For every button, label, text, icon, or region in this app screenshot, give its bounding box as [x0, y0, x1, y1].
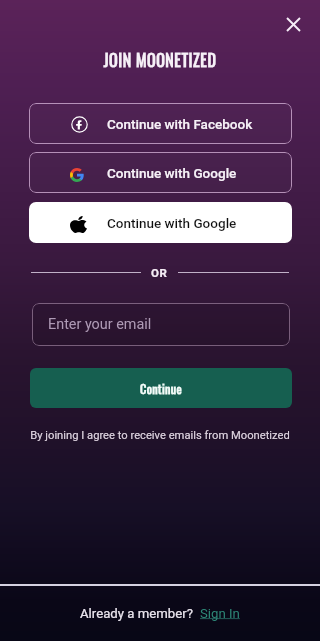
button[interactable]: Sign In [200, 606, 240, 621]
staticText: By joining I agree to receive emails fro… [0, 429, 320, 442]
staticText: Continue [140, 379, 182, 397]
button[interactable]: Enter your email [32, 303, 290, 346]
staticText: Enter your email [48, 316, 152, 333]
staticText: Already a member? [80, 606, 200, 621]
staticText: Continue with Google [107, 215, 237, 231]
button[interactable]: Continue with Google [29, 202, 292, 243]
staticText: OR [151, 266, 168, 279]
staticText: Sign In [200, 606, 240, 621]
button[interactable]: Continue with Google [29, 152, 292, 193]
button[interactable]: Continue [30, 368, 292, 408]
staticText: Continue with Google [107, 165, 237, 181]
staticText: Continue with Facebook [107, 116, 253, 132]
staticText: JOIN MOONETIZED [0, 48, 320, 72]
button[interactable]: Close [278, 9, 308, 39]
button[interactable]: Continue with Facebook [29, 103, 292, 144]
